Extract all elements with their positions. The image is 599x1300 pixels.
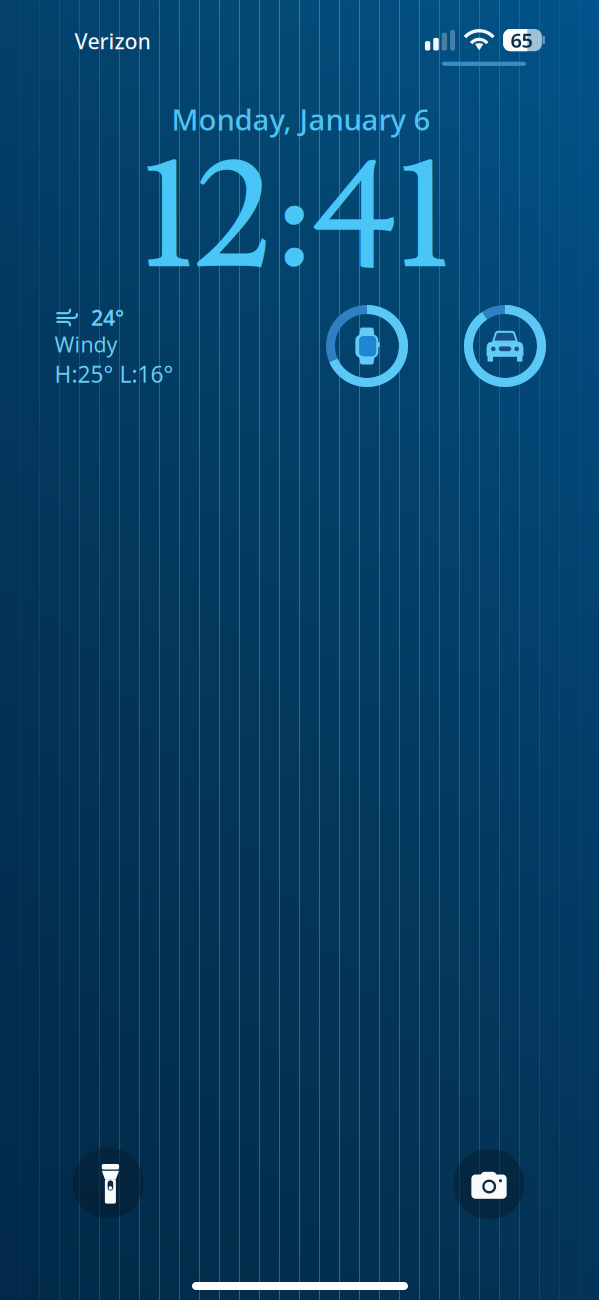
staticText: Windy — [54, 330, 117, 358]
staticText: 12:41 — [142, 119, 450, 318]
staticText: Monday, January 6 — [171, 99, 430, 138]
staticText: 24° — [91, 303, 124, 331]
staticText: H:25° L:16° — [54, 359, 173, 389]
staticText: Verizon — [74, 27, 150, 55]
button[interactable]: Camera — [453, 1148, 524, 1219]
button[interactable]: Flashlight — [72, 1147, 143, 1218]
staticText: 65 — [511, 27, 533, 53]
